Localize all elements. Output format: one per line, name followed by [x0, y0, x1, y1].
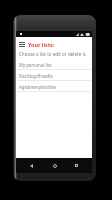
button[interactable]: Recent apps	[69, 158, 84, 173]
button[interactable]: Agsdrwmybrother	[16, 81, 92, 92]
staticText: My personal list	[19, 62, 52, 68]
staticText: Agsdrwmybrother	[19, 84, 57, 90]
button[interactable]: Roxfdsgcfhsadfs	[16, 70, 92, 81]
button[interactable]: My personal list	[16, 59, 92, 70]
staticText: Choose a list to edit or delete it.	[19, 51, 87, 57]
button[interactable]: Home	[47, 158, 62, 173]
staticText: Your lists:	[28, 41, 55, 48]
button[interactable]: Open navigation menu	[18, 39, 26, 49]
button[interactable]: Back	[24, 158, 39, 173]
staticText: Roxfdsgcfhsadfs	[19, 73, 53, 79]
